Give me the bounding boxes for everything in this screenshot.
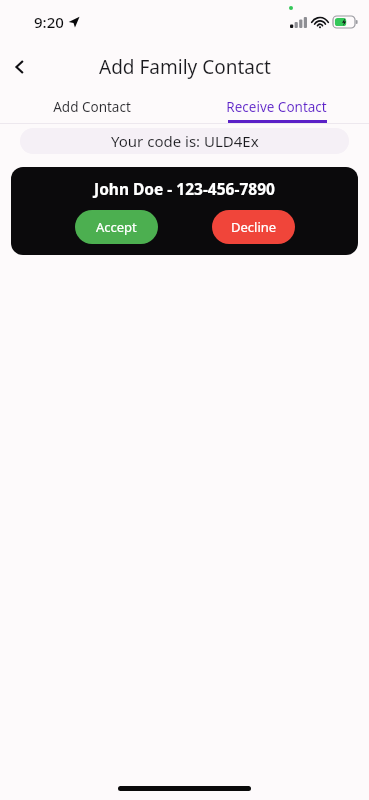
staticText: Add Family Contact bbox=[99, 54, 271, 80]
button[interactable]: Accept bbox=[75, 210, 158, 244]
staticText: 9:20 bbox=[34, 12, 64, 32]
staticText: Your code is: ULD4Ex bbox=[111, 131, 259, 151]
staticText: Add Contact bbox=[53, 98, 131, 116]
staticText: Receive Contact bbox=[226, 98, 327, 116]
staticText: Accept bbox=[96, 218, 137, 236]
staticText: John Doe - 123-456-7890 bbox=[94, 178, 275, 199]
button[interactable]: Decline bbox=[212, 210, 295, 244]
button[interactable]: Add Contact bbox=[0, 90, 184, 123]
button[interactable]: Receive Contact bbox=[184, 90, 369, 123]
staticText: Decline bbox=[231, 218, 277, 236]
button[interactable]: Your code is: ULD4Ex bbox=[20, 128, 349, 154]
button[interactable]: Back bbox=[4, 51, 36, 83]
